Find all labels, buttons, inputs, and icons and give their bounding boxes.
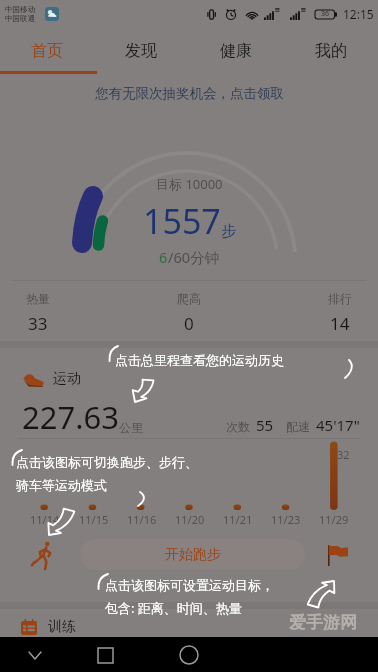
staticText: 您有无限次抽奖机会，点击领取: [95, 85, 284, 102]
staticText: 点击总里程查看您的运动历史: [115, 352, 284, 368]
button[interactable]: 健康: [188, 28, 283, 73]
staticText: 公里: [119, 420, 143, 435]
staticText: 训练: [48, 618, 76, 636]
staticText: 骑车等运动模式: [16, 477, 107, 493]
staticText: 11/15: [79, 512, 109, 527]
staticText: 11/14: [30, 512, 60, 527]
staticText: 12:15: [343, 6, 374, 22]
button[interactable]: Back: [21, 641, 49, 669]
staticText: 热量: [26, 291, 50, 306]
staticText: 11/20: [175, 512, 205, 527]
staticText: 227.63: [22, 396, 119, 438]
staticText: 中国联通: [5, 14, 35, 23]
button[interactable]: 开始跑步: [80, 539, 305, 570]
staticText: 点击该图标可设置运动目标，: [105, 577, 274, 593]
button[interactable]: 热量: [26, 291, 50, 335]
staticText: 爱手游网: [289, 612, 357, 633]
button[interactable]: 首页: [0, 28, 94, 73]
button[interactable]: Recents: [175, 641, 203, 669]
staticText: 开始跑步: [165, 546, 221, 564]
staticText: 0: [184, 312, 194, 335]
staticText: 6: [159, 247, 168, 267]
staticText: 36: [321, 9, 330, 19]
staticText: 次数: [226, 419, 250, 434]
staticText: 包含: 距离、时间、热量: [105, 599, 242, 617]
staticText: 45'17": [316, 415, 360, 435]
button[interactable]: 我的: [283, 28, 378, 73]
staticText: 11/23: [271, 512, 301, 527]
staticText: 目标 10000: [156, 175, 223, 193]
staticText: 我的: [315, 41, 347, 61]
staticText: 1557: [143, 198, 221, 244]
button[interactable]: 排行: [328, 291, 352, 335]
staticText: 14: [330, 312, 350, 335]
staticText: 排行: [328, 291, 352, 306]
staticText: 运动: [53, 370, 81, 388]
button[interactable]: 训练: [21, 616, 378, 638]
staticText: 11/16: [127, 512, 157, 527]
staticText: 首页: [31, 41, 63, 61]
button[interactable]: 切换运动模式: [25, 538, 59, 572]
staticText: /60分钟: [168, 247, 219, 267]
button[interactable]: Home: [91, 641, 119, 669]
staticText: 配速: [286, 419, 310, 434]
staticText: 33: [28, 312, 48, 335]
button[interactable]: 爬高: [177, 291, 201, 335]
staticText: 发现: [125, 41, 157, 61]
staticText: ishouyou.cn: [288, 636, 357, 652]
staticText: 点击该图标可切换跑步、步行、: [16, 454, 198, 470]
staticText: 32: [337, 447, 350, 462]
button[interactable]: 发现: [94, 28, 188, 73]
button[interactable]: 设置运动目标: [320, 538, 354, 572]
staticText: 55: [256, 415, 274, 435]
staticText: 爬高: [177, 291, 201, 306]
staticText: 中国移动: [5, 5, 35, 14]
staticText: 11/29: [319, 512, 349, 527]
staticText: 11/21: [223, 512, 253, 527]
staticText: 健康: [220, 41, 252, 61]
staticText: 步: [221, 222, 236, 241]
button[interactable]: 您有无限次抽奖机会，点击领取: [0, 85, 378, 131]
